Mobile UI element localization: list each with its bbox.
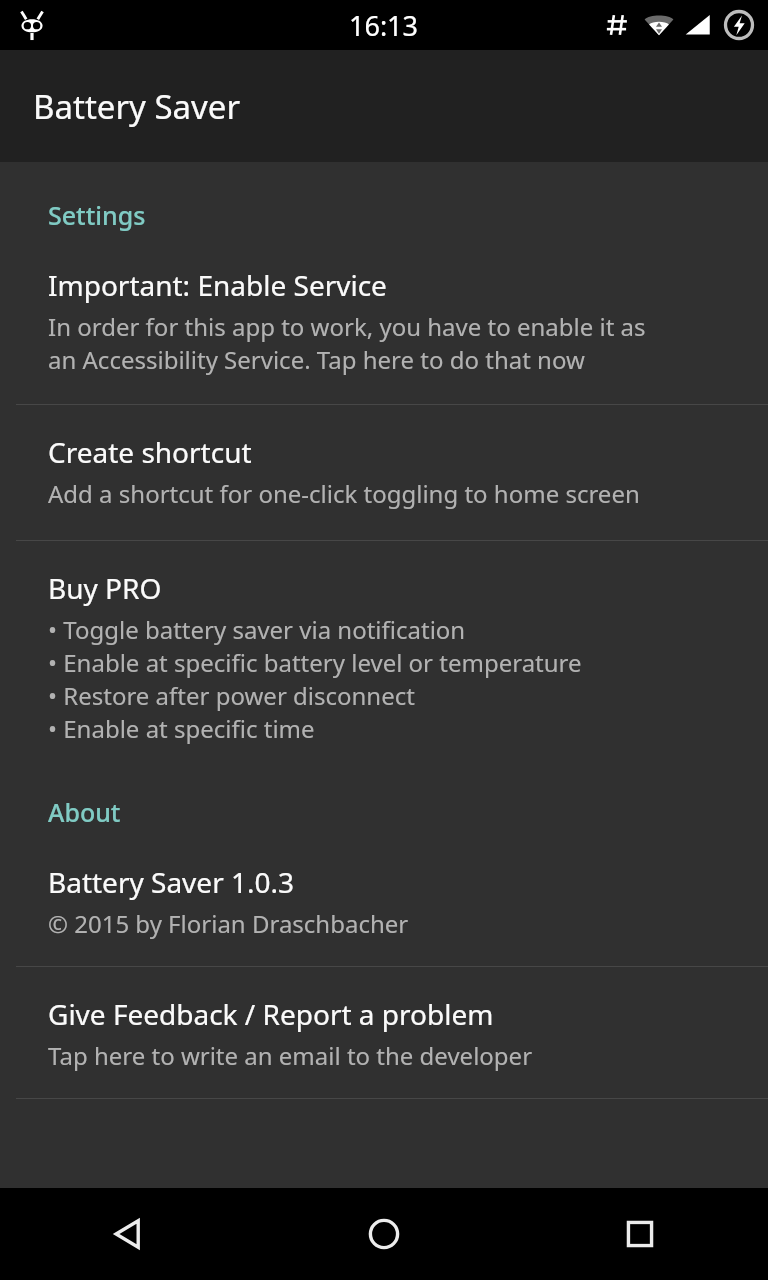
- staticText: Important: Enable Service: [48, 266, 387, 304]
- button[interactable]: Back: [0, 1188, 256, 1280]
- staticText: Create shortcut: [48, 433, 252, 471]
- staticText: Buy PRO: [48, 569, 162, 607]
- staticText: In order for this app to work, you have …: [48, 310, 646, 343]
- button[interactable]: Buy PRO: [0, 569, 768, 745]
- staticText: Tap here to write an email to the develo…: [48, 1039, 533, 1072]
- button[interactable]: Give Feedback / Report a problem: [0, 995, 768, 1072]
- button[interactable]: Create shortcut: [0, 433, 768, 510]
- staticText: • Enable at specific battery level or te…: [48, 646, 582, 679]
- staticText: • Toggle battery saver via notification: [48, 613, 466, 646]
- staticText: About: [48, 795, 121, 829]
- button[interactable]: Home: [256, 1188, 512, 1280]
- staticText: Give Feedback / Report a problem: [48, 995, 494, 1033]
- button[interactable]: Important: Enable Service: [0, 266, 768, 376]
- staticText: Add a shortcut for one-click toggling to…: [48, 477, 640, 510]
- staticText: 16:13: [349, 7, 419, 44]
- staticText: © 2015 by Florian Draschbacher: [48, 907, 409, 940]
- staticText: • Restore after power disconnect: [48, 679, 415, 712]
- staticText: Battery Saver 1.0.3: [48, 863, 295, 901]
- staticText: Settings: [48, 198, 146, 232]
- staticText: • Enable at specific time: [48, 712, 315, 745]
- button[interactable]: Recent apps: [512, 1188, 768, 1280]
- staticText: an Accessibility Service. Tap here to do…: [48, 343, 585, 376]
- button[interactable]: Battery Saver 1.0.3: [0, 863, 768, 940]
- staticText: Battery Saver: [33, 84, 241, 129]
